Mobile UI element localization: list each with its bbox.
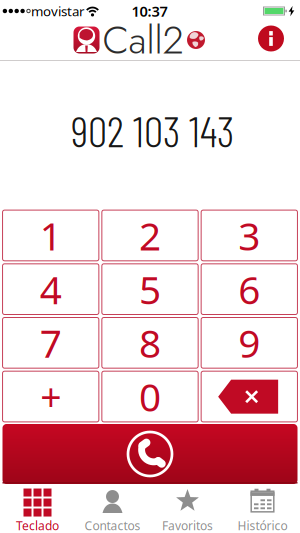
button[interactable]: 3: [201, 210, 297, 261]
staticText: 5: [139, 263, 161, 315]
button[interactable]: 5: [102, 264, 198, 314]
button[interactable]: Teclado: [0, 484, 75, 533]
button[interactable]: 6: [201, 264, 297, 314]
button[interactable]: 2: [102, 210, 198, 261]
staticText: 9: [238, 317, 260, 368]
staticText: +: [40, 372, 61, 421]
button[interactable]: 0: [102, 371, 198, 422]
staticText: Contactos: [84, 517, 140, 533]
button[interactable]: 1: [3, 210, 99, 261]
button[interactable]: 4: [3, 264, 99, 314]
staticText: 4: [40, 263, 62, 315]
staticText: 3: [238, 210, 260, 261]
staticText: 6: [238, 263, 260, 315]
staticText: 8: [139, 317, 161, 368]
staticText: Teclado: [16, 517, 59, 533]
button[interactable]: Call: [0, 424, 300, 484]
staticText: 1: [40, 210, 62, 261]
staticText: 7: [40, 317, 62, 368]
button[interactable]: Delete: [201, 371, 297, 422]
button[interactable]: 9: [201, 317, 297, 368]
button[interactable]: 8: [102, 317, 198, 368]
button[interactable]: Histórico: [225, 484, 300, 533]
staticText: Histórico: [237, 517, 287, 533]
button[interactable]: +: [3, 371, 99, 422]
staticText: Favoritos: [162, 517, 213, 533]
button[interactable]: 7: [3, 317, 99, 368]
button[interactable]: Favoritos: [150, 484, 225, 533]
staticText: 902 103 143: [71, 104, 234, 156]
staticText: Call2: [102, 12, 183, 68]
staticText: 0: [139, 371, 161, 422]
staticText: movistar: [31, 2, 85, 20]
button[interactable]: Info: [258, 25, 284, 51]
button[interactable]: Contactos: [75, 484, 150, 533]
staticText: 10:37: [131, 1, 167, 21]
staticText: 2: [139, 210, 161, 261]
